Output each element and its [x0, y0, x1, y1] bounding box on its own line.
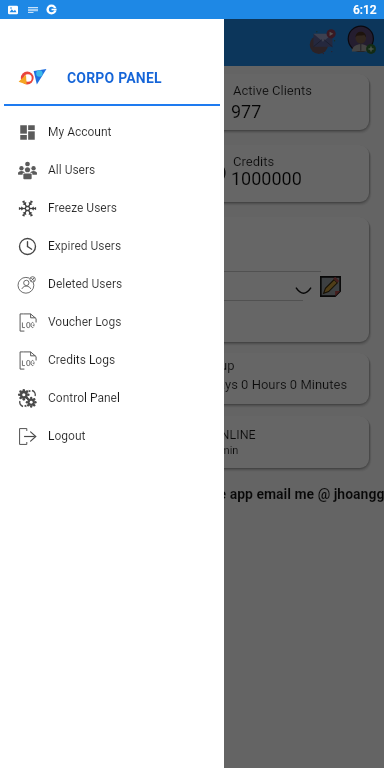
button[interactable]: Messages: [308, 25, 342, 59]
staticText: 6:12: [353, 3, 377, 17]
button[interactable]: My Account: [0, 113, 224, 151]
staticText: the app email me @ jhoanggg: [206, 486, 384, 502]
button[interactable]: Edit: [319, 275, 342, 298]
button[interactable]: Credits Logs: [0, 341, 224, 379]
staticText: 1000000: [231, 168, 302, 189]
staticText: All Users: [48, 163, 96, 177]
button[interactable]: Freeze Users: [0, 189, 224, 227]
staticText: Active Clients: [233, 83, 312, 98]
button[interactable]: All Users: [0, 151, 224, 189]
staticText: ONLINE: [212, 427, 256, 442]
staticText: Expired Users: [48, 239, 122, 253]
button[interactable]: Control Panel: [0, 379, 224, 417]
staticText: Control Panel: [48, 391, 120, 405]
staticText: Freeze Users: [48, 201, 117, 215]
button[interactable]: CORPO PANEL: [0, 56, 224, 100]
staticText: CORPO PANEL: [67, 70, 162, 86]
button[interactable]: Expired Users: [0, 227, 224, 265]
staticText: Voucher Logs: [48, 315, 122, 329]
staticText: Logout: [48, 429, 86, 443]
staticText: 977: [231, 101, 262, 122]
staticText: 0 Days 0 Hours 0 Minutes: [199, 377, 348, 392]
staticText: Credits Logs: [48, 353, 116, 367]
button[interactable]: Deleted Users: [0, 265, 224, 303]
button[interactable]: Add user: [347, 25, 377, 55]
staticText: Credits: [233, 154, 275, 169]
button[interactable]: Voucher Logs: [0, 303, 224, 341]
staticText: min: [220, 444, 239, 457]
staticText: My Account: [48, 125, 112, 139]
staticText: Deleted Users: [48, 277, 123, 291]
staticText: up: [220, 358, 235, 373]
button[interactable]: Logout: [0, 417, 224, 455]
